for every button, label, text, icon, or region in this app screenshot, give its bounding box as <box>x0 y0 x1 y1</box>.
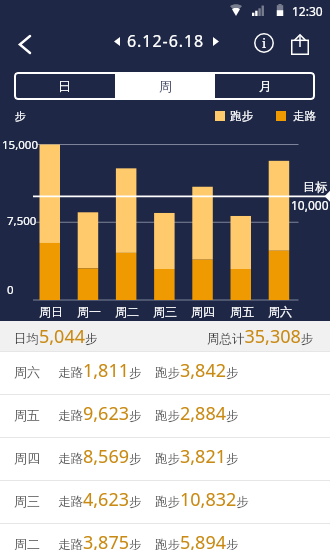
staticText: i <box>262 34 267 52</box>
staticText: 走路 <box>293 109 316 123</box>
staticText: 月 <box>259 78 272 94</box>
staticText: 10,000 <box>291 197 329 213</box>
staticText: 跑步2,884步 <box>155 401 239 426</box>
button[interactable]: Back <box>3 22 47 66</box>
button[interactable]: 6.12-6.18 <box>112 30 221 52</box>
staticText: 日均5,044步 <box>14 324 98 349</box>
staticText: 12:30 <box>292 3 323 19</box>
staticText: 周四 <box>14 450 40 466</box>
staticText: 跑步5,894步 <box>155 530 239 550</box>
staticText: 日 <box>58 78 71 94</box>
staticText: 跑步 <box>230 109 253 123</box>
staticText: 0 <box>7 282 14 298</box>
staticText: 7,500 <box>7 213 37 229</box>
staticText: 走路1,811步 <box>58 358 142 383</box>
staticText: 周一 <box>77 304 101 319</box>
staticText: 周日 <box>39 304 63 319</box>
staticText: 周二 <box>115 304 139 319</box>
staticText: 周三 <box>153 304 177 319</box>
staticText: 周三 <box>14 493 40 509</box>
staticText: 6.12-6.18 <box>127 30 205 52</box>
staticText: 走路4,623步 <box>58 487 142 512</box>
staticText: 跑步3,842步 <box>155 358 239 383</box>
staticText: 周总计35,308步 <box>207 324 314 349</box>
button[interactable]: Share <box>282 26 318 62</box>
staticText: 15,000 <box>2 137 38 153</box>
staticText: 周 <box>159 78 172 94</box>
staticText: 目标 <box>303 179 327 194</box>
staticText: 周六 <box>14 364 40 380</box>
staticText: 跑步10,832步 <box>155 487 249 512</box>
staticText: 周五 <box>14 407 40 423</box>
button[interactable]: 周二 <box>0 524 330 550</box>
staticText: 走路9,623步 <box>58 401 142 426</box>
button[interactable]: 周六 <box>0 352 330 394</box>
button[interactable]: 周三 <box>0 481 330 523</box>
staticText: 周四 <box>191 304 215 319</box>
staticText: 周六 <box>268 304 292 319</box>
button[interactable]: 月 <box>215 72 315 100</box>
staticText: 周二 <box>14 536 40 550</box>
staticText: 步 <box>15 109 26 123</box>
button[interactable]: Info <box>246 25 282 61</box>
staticText: 跑步3,821步 <box>155 444 239 469</box>
staticText: 走路3,875步 <box>58 530 142 550</box>
button[interactable]: 周四 <box>0 438 330 480</box>
button[interactable]: 日 <box>14 72 115 100</box>
button[interactable]: 周 <box>115 72 215 100</box>
button[interactable]: 周五 <box>0 395 330 437</box>
staticText: 走路8,569步 <box>58 444 142 469</box>
staticText: 周五 <box>230 304 254 319</box>
